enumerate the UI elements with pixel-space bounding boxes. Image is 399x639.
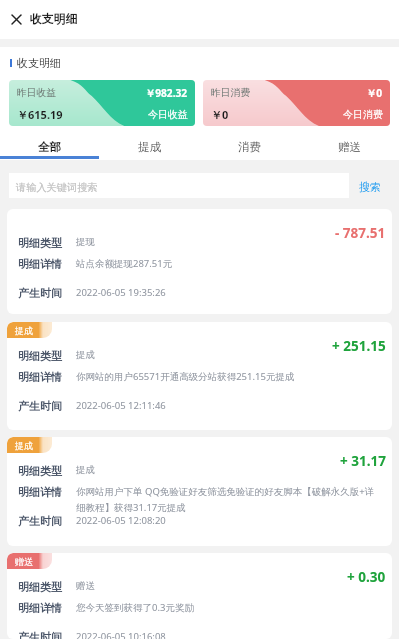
staticText: 2022-06-05 12:11:46 [76,399,377,412]
staticText: 明细类型 [18,580,76,594]
staticText: 明细类型 [18,349,76,363]
staticText: 收支明细 [17,56,61,70]
staticText: 产生时间 [18,514,76,528]
staticText: 提成 [15,440,33,451]
staticText: 产生时间 [18,286,76,300]
staticText: 你网站用户下单 QQ免验证好友筛选免验证的好友脚本【破解永久版+详细教程】获得3… [76,485,377,514]
staticText: 2022-06-05 19:35:26 [76,286,377,299]
staticText: ￥0 [366,86,383,100]
button[interactable]: 昨日消费 [203,80,390,126]
staticText: 提成 [76,349,377,361]
staticText: - 787.51 [335,224,386,242]
staticText: 赠送 [15,556,33,567]
staticText: 消费 [238,140,261,154]
staticText: + 31.17 [340,452,386,470]
staticText: 昨日收益 [17,87,57,99]
staticText: 站点余额提现287.51元 [76,257,377,270]
staticText: 明细详情 [18,257,76,271]
staticText: ￥615.19 [17,107,63,122]
staticText: 您今天签到获得了0.3元奖励 [76,601,377,614]
staticText: 赠送 [338,140,361,154]
staticText: 昨日消费 [211,87,251,99]
staticText: 赠送 [76,580,377,592]
staticText: 产生时间 [18,399,76,413]
staticText: 请输入关键词搜索 [16,181,98,194]
staticText: 2022-06-05 10:16:08 [76,630,377,639]
button[interactable]: 提成 [99,137,199,156]
staticText: 今日消费 [343,108,383,121]
staticText: 明细类型 [18,464,76,478]
staticText: 提成 [76,464,377,476]
staticText: ￥982.32 [145,86,188,100]
staticText: 明细详情 [18,601,76,615]
staticText: + 0.30 [347,568,386,586]
button[interactable]: 搜索 [349,173,390,198]
staticText: ￥0 [211,107,229,122]
staticText: 提现 [76,236,377,248]
staticText: + 251.15 [332,337,386,355]
staticText: 产生时间 [18,630,76,639]
button[interactable]: - 787.51 [7,209,392,314]
staticText: 你网站的用户65571开通高级分站获得251.15元提成 [76,370,377,383]
button[interactable]: 全部 [0,137,99,156]
staticText: 明细类型 [18,236,76,250]
button[interactable]: 消费 [199,137,299,156]
staticText: 提成 [138,140,161,154]
staticText: 明细详情 [18,370,76,384]
staticText: 今日收益 [148,108,188,121]
button[interactable]: 提成 [7,437,392,546]
button[interactable]: 赠送 [299,137,399,156]
staticText: 2022-06-05 12:08:20 [76,514,377,527]
button[interactable]: 请输入关键词搜索 [9,173,349,198]
staticText: 提成 [15,325,33,336]
button[interactable]: 昨日收益 [9,80,195,126]
staticText: 收支明细 [30,12,78,27]
button[interactable]: 提成 [7,322,392,430]
button[interactable]: 赠送 [7,553,392,639]
staticText: 明细详情 [18,485,76,499]
staticText: 全部 [38,140,61,154]
staticText: 搜索 [359,180,381,194]
button[interactable]: Close [3,6,29,32]
